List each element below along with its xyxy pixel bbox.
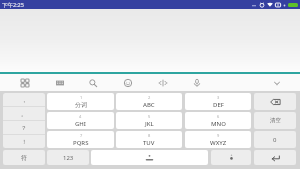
staticText: ？ [21,124,27,132]
staticText: 6 [217,114,220,119]
button[interactable]: Voice input [190,76,204,90]
button[interactable]: Cursor move [156,76,170,90]
button[interactable]: Punctuation [211,150,251,165]
staticText: 8 [148,133,151,138]
button[interactable]: 清空 [254,112,296,129]
staticText: WXYZ [210,139,227,147]
button[interactable]: Keyboard layouts [18,76,32,90]
staticText: 符 [21,154,27,162]
staticText: 清空 [270,117,281,124]
button[interactable]: 2 [116,93,182,110]
staticText: ABC [143,101,155,109]
button[interactable]: 符 [3,150,45,165]
staticText: MNO [211,120,226,128]
staticText: 0 [273,136,277,144]
staticText: 7 [80,133,83,138]
staticText: DEF [213,101,224,109]
button[interactable]: 5 [116,112,182,129]
button[interactable]: 8 [116,131,182,148]
staticText: 1 [80,95,83,100]
button[interactable]: 123 [47,150,89,165]
staticText: JKL [145,120,154,128]
button[interactable]: 1 [47,93,114,110]
staticText: GHI [75,120,86,128]
staticText: ， [21,96,27,104]
staticText: TUV [143,139,155,147]
staticText: 。 [21,110,27,118]
staticText: 2 [148,95,151,100]
button[interactable]: 9 [185,131,251,148]
button[interactable]: ？ [3,121,45,134]
button[interactable]: 4 [47,112,114,129]
staticText: 下午2:25 [2,1,24,9]
button[interactable]: Emoji [121,76,135,90]
button[interactable]: 0 [254,131,296,148]
button[interactable]: Backspace [254,93,296,110]
button[interactable]: 6 [185,112,251,129]
staticText: 9 [217,133,220,138]
button[interactable]: Hide keyboard [270,76,284,90]
staticText: 5 [148,114,151,119]
button[interactable]: Search [86,76,100,90]
staticText: 123 [63,154,74,162]
staticText: 分词 [75,101,87,109]
staticText: PQRS [73,139,89,147]
button[interactable]: ！ [3,135,45,148]
button[interactable]: 7 [47,131,114,148]
staticText: ！ [21,138,27,146]
staticText: 4 [79,114,82,119]
button[interactable]: 3 [185,93,251,110]
staticText: 3 [217,95,220,100]
button[interactable]: Keyboard [53,76,67,90]
button[interactable]: Enter [254,150,296,165]
button[interactable]: Space [91,150,208,165]
